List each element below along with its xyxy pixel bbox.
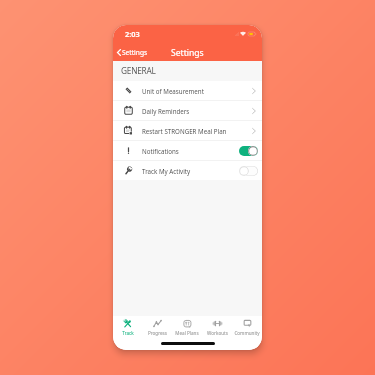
button[interactable]: Meal Plans xyxy=(172,316,202,339)
button[interactable]: Community xyxy=(232,316,262,339)
button[interactable]: Settings xyxy=(113,48,152,57)
staticText: Track xyxy=(122,330,134,336)
staticText: Restart STRONGER Meal Plan xyxy=(142,127,227,135)
button[interactable]: Track xyxy=(113,316,142,339)
staticText: GENERAL xyxy=(121,65,156,76)
staticText: Progress xyxy=(148,330,167,336)
staticText: 2:03 xyxy=(125,29,140,39)
button[interactable]: Restart STRONGER Meal Plan xyxy=(113,121,262,140)
staticText: Workouts xyxy=(207,330,228,336)
staticText: Track My Activity xyxy=(142,167,191,175)
button[interactable]: Notifications xyxy=(113,141,262,160)
staticText: Settings xyxy=(171,47,204,59)
staticText: Unit of Measurement xyxy=(142,87,204,95)
button[interactable]: Progress xyxy=(142,316,172,339)
staticText: Settings xyxy=(122,48,148,57)
button[interactable]: Unit of Measurement xyxy=(113,81,262,100)
staticText: Notifications xyxy=(142,147,179,155)
staticText: Daily Reminders xyxy=(142,107,190,115)
button[interactable]: Track My Activity xyxy=(113,161,262,180)
button[interactable]: Daily Reminders xyxy=(113,101,262,120)
button[interactable]: Workouts xyxy=(202,316,232,339)
staticText: Meal Plans xyxy=(175,330,199,336)
staticText: Community xyxy=(234,330,260,336)
